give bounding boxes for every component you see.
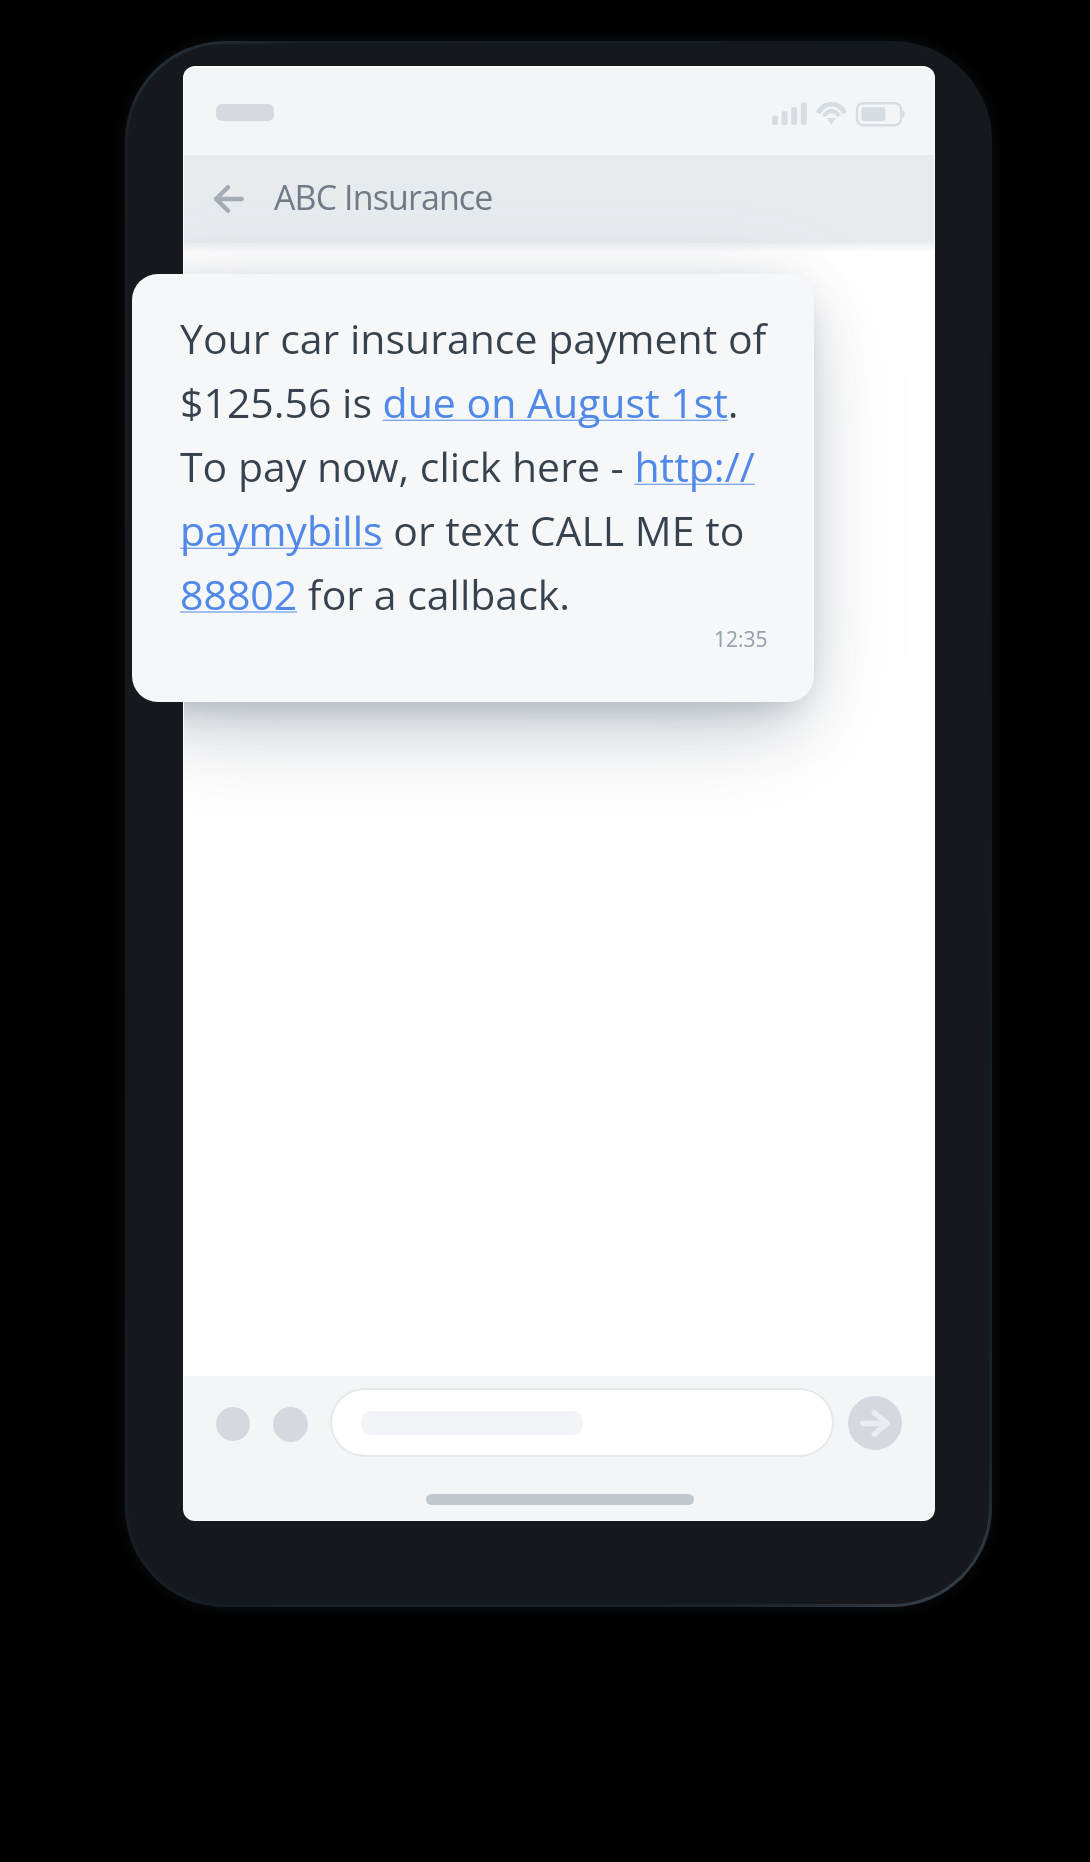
button[interactable]: Your car insurance payment of $125.56 is… [132,274,814,702]
button[interactable]: Add attachment [216,1407,250,1441]
button[interactable]: Send [848,1396,902,1450]
staticText: 12:35 [714,625,768,654]
button[interactable]: Back [194,164,264,234]
staticText: ABC Insurance [274,174,493,220]
staticText: Your car insurance payment of $125.56 is… [180,310,780,622]
button[interactable]: Camera [273,1407,308,1442]
button[interactable] [332,1390,832,1455]
